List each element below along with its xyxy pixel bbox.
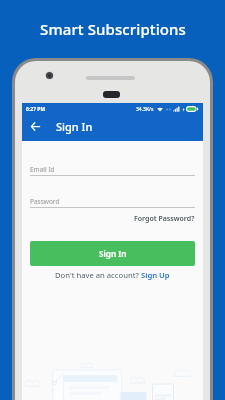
button[interactable]: Forgot Password?	[134, 214, 195, 224]
staticText: Forgot Password?	[134, 214, 195, 224]
staticText: Password	[30, 197, 60, 206]
staticText: Sign In	[56, 119, 93, 134]
staticText: Email Id	[30, 165, 55, 174]
button[interactable]: Back	[27, 118, 43, 134]
staticText: 34.3K/s	[136, 106, 154, 113]
button[interactable]: Sign In	[30, 241, 195, 266]
button[interactable]: Sign Up	[141, 270, 170, 280]
staticText: Sign In	[99, 248, 127, 259]
staticText: Don't have an account?	[55, 270, 141, 280]
staticText: 6:27 PM	[26, 106, 46, 113]
staticText: Smart Subscriptions	[40, 19, 186, 39]
staticText: Sign Up	[141, 270, 170, 280]
